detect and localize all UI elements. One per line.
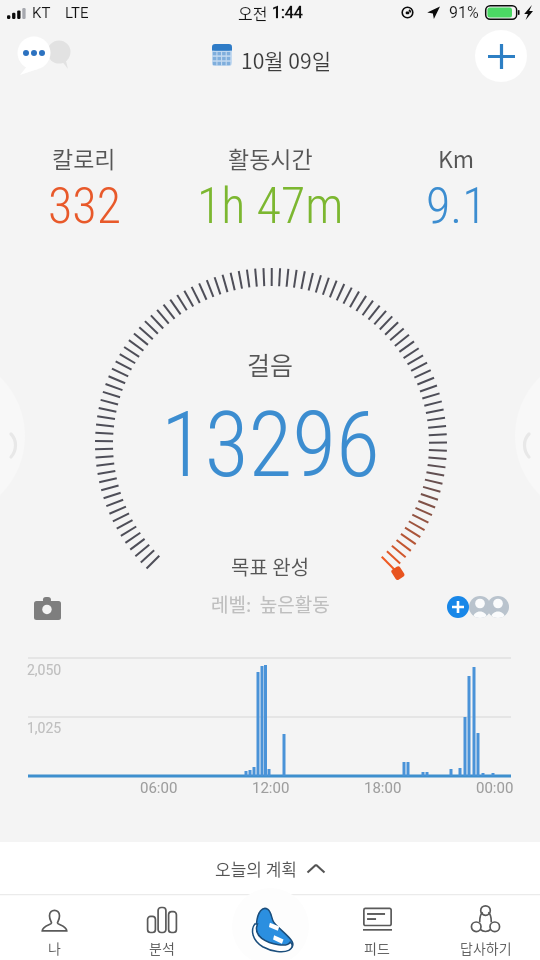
staticText: 1:44 bbox=[272, 3, 303, 22]
staticText: 나 bbox=[48, 938, 61, 958]
staticText: 13296 bbox=[161, 393, 380, 498]
staticText: 피드 bbox=[364, 938, 390, 958]
staticText: Km bbox=[438, 141, 475, 174]
staticText: 레벨: 높은활동 bbox=[211, 590, 330, 618]
button[interactable]: Explore bbox=[432, 891, 540, 960]
button[interactable]: Me bbox=[0, 891, 108, 960]
staticText: 1h 47m bbox=[197, 177, 344, 236]
staticText: 1,025 bbox=[27, 720, 62, 736]
staticText: 오전 bbox=[238, 1, 272, 24]
button[interactable]: Camera bbox=[26, 589, 68, 627]
button[interactable]: Analysis bbox=[108, 891, 216, 960]
button[interactable] bbox=[196, 36, 346, 74]
button[interactable]: Messages bbox=[4, 26, 74, 82]
staticText: 12:00 bbox=[252, 779, 290, 797]
staticText: 2,050 bbox=[27, 662, 62, 678]
button[interactable]: Activity bbox=[232, 888, 309, 960]
staticText: 오늘의 계획 bbox=[215, 856, 298, 881]
button[interactable]: Feed bbox=[324, 891, 432, 960]
staticText: 답사하기 bbox=[460, 938, 512, 958]
staticText: 332 bbox=[48, 177, 121, 236]
staticText: 10월 09일 bbox=[241, 45, 331, 75]
staticText: 00:00 bbox=[476, 779, 514, 797]
staticText: KT bbox=[32, 4, 51, 22]
staticText: 분석 bbox=[149, 938, 175, 958]
staticText: LTE bbox=[65, 4, 89, 22]
staticText: 91% bbox=[449, 3, 479, 22]
staticText: 활동시간 bbox=[228, 141, 313, 174]
staticText: 걸음 bbox=[247, 346, 294, 382]
staticText: 18:00 bbox=[364, 779, 402, 797]
button[interactable]: 오늘의 계획 bbox=[0, 842, 540, 894]
button[interactable]: Add friend bbox=[447, 596, 469, 618]
staticText: 06:00 bbox=[140, 779, 178, 797]
staticText: 9.1 bbox=[426, 177, 487, 236]
button[interactable]: Add bbox=[475, 30, 527, 82]
staticText: 칼로리 bbox=[52, 141, 116, 174]
staticText: 목표 완성 bbox=[231, 552, 310, 581]
